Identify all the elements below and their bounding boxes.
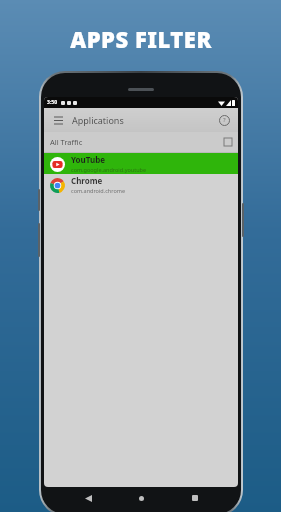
staticText: All Traffic [50, 137, 83, 147]
staticText: com.android.chrome [71, 187, 125, 194]
staticText: ? [223, 116, 226, 124]
staticText: com.google.android.youtube [71, 166, 147, 173]
button[interactable]: All Traffic [44, 132, 238, 152]
button[interactable]: Recents [185, 488, 205, 508]
button[interactable]: YouTube [44, 153, 238, 174]
staticText: YouTube [71, 154, 106, 165]
staticText: 3:50 [47, 99, 57, 106]
staticText: APPS FILTER [70, 24, 212, 54]
button[interactable]: Help [216, 112, 232, 128]
button[interactable]: Home [131, 488, 151, 508]
button[interactable]: Chrome [44, 174, 238, 195]
staticText: Chrome [71, 175, 103, 186]
staticText: Applications [72, 114, 124, 126]
button[interactable]: Open navigation menu [50, 112, 66, 128]
button[interactable]: Back [78, 488, 98, 508]
